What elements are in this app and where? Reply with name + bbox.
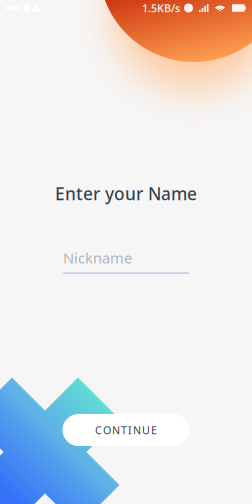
staticText: Enter your Name: [55, 182, 197, 205]
staticText: 1.5KB/s: [142, 1, 180, 15]
staticText: Nickname: [63, 248, 132, 267]
button[interactable]: CONTINUE: [62, 414, 189, 446]
staticText: CONTINUE: [95, 423, 157, 437]
